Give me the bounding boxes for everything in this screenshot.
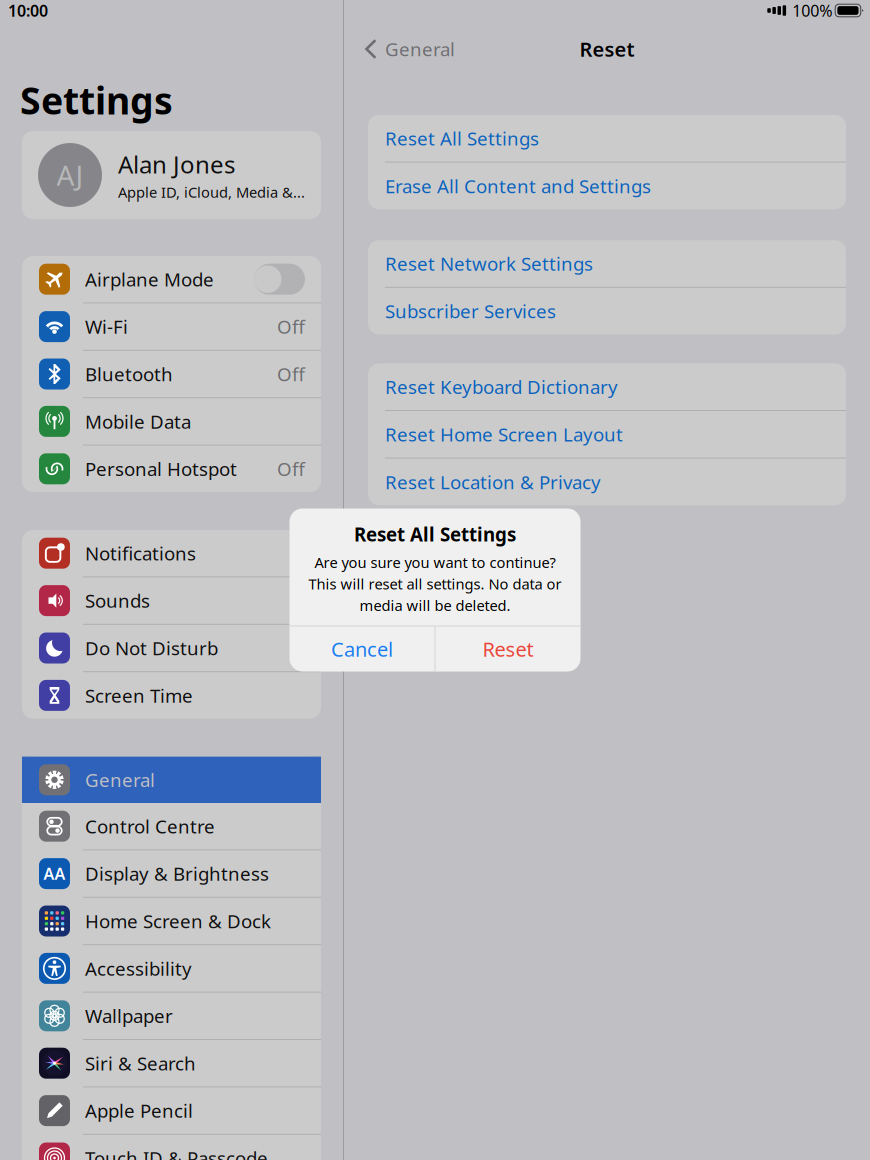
staticText: Personal Hotspot [85, 456, 237, 481]
staticText: AJ [56, 156, 83, 194]
staticText: Reset Network Settings [385, 251, 593, 276]
button[interactable]: Bluetooth [22, 351, 321, 397]
button[interactable]: Personal Hotspot [22, 446, 321, 492]
staticText: Touch ID & Passcode [85, 1146, 268, 1160]
staticText: Bluetooth [85, 362, 173, 386]
staticText: Airplane Mode [85, 267, 214, 292]
button[interactable]: Reset All Settings [368, 115, 846, 162]
button[interactable]: Accessibility [22, 945, 321, 992]
button[interactable]: Do Not Disturb [22, 625, 321, 671]
staticText: Home Screen & Dock [85, 909, 271, 933]
staticText: Sounds [85, 588, 150, 613]
staticText: Reset [579, 36, 634, 62]
staticText: Wallpaper [85, 1003, 173, 1028]
staticText: Are you sure you want to continue? [314, 553, 555, 572]
button[interactable]: Control Centre [22, 803, 321, 849]
staticText: Control Centre [85, 814, 215, 839]
button[interactable]: Notifications [22, 530, 321, 576]
staticText: Screen Time [85, 683, 193, 708]
button[interactable]: Airplane Mode [22, 256, 321, 302]
button[interactable]: Cancel [289, 626, 434, 671]
button[interactable]: General [344, 27, 465, 71]
staticText: Siri & Search [85, 1051, 196, 1076]
staticText: Reset All Settings [354, 522, 516, 547]
button[interactable]: Screen Time [22, 672, 321, 719]
button[interactable]: Apple Pencil [22, 1087, 321, 1134]
staticText: Apple Pencil [85, 1098, 193, 1123]
staticText: Off [277, 314, 305, 339]
staticText: Reset [482, 636, 533, 662]
staticText: Accessibility [85, 956, 192, 981]
button[interactable]: Subscriber Services [368, 288, 846, 334]
staticText: Cancel [331, 636, 393, 662]
staticText: This will reset all settings. No data or [308, 574, 561, 594]
staticText: 10:00 [8, 0, 48, 21]
staticText: Alan Jones [118, 148, 235, 180]
button[interactable]: General [22, 757, 321, 803]
button[interactable]: Home Screen & Dock [22, 898, 321, 944]
staticText: 100% [792, 0, 832, 21]
staticText: Reset Location & Privacy [385, 469, 601, 494]
button[interactable]: AA [22, 850, 321, 897]
button[interactable]: Mobile Data [22, 398, 321, 445]
button[interactable]: Reset Keyboard Dictionary [368, 363, 846, 410]
staticText: Notifications [85, 541, 196, 566]
staticText: Mobile Data [85, 409, 191, 434]
button[interactable]: Wallpaper [22, 993, 321, 1039]
staticText: Display & Brightness [85, 861, 269, 886]
staticText: Off [277, 456, 305, 481]
staticText: Do Not Disturb [85, 636, 218, 660]
button[interactable]: Reset [435, 626, 580, 671]
staticText: Erase All Content and Settings [385, 173, 651, 198]
button[interactable]: Reset Home Screen Layout [368, 411, 846, 458]
staticText: Off [277, 362, 305, 386]
button[interactable]: Wi-Fi [22, 303, 321, 350]
staticText: General [85, 767, 155, 792]
button[interactable]: Reset Location & Privacy [368, 459, 846, 505]
staticText: media will be deleted. [359, 596, 510, 615]
button[interactable]: Touch ID & Passcode [22, 1135, 321, 1160]
staticText: AA [43, 863, 65, 884]
staticText: Apple ID, iCloud, Media &... [118, 182, 305, 202]
staticText: Reset Home Screen Layout [385, 422, 623, 447]
staticText: General [385, 37, 455, 61]
button[interactable]: Siri & Search [22, 1040, 321, 1086]
staticText: Reset Keyboard Dictionary [385, 374, 618, 399]
staticText: Wi-Fi [85, 314, 128, 339]
button[interactable]: Reset Network Settings [368, 240, 846, 287]
staticText: Reset All Settings [385, 126, 539, 151]
staticText: Subscriber Services [385, 299, 556, 323]
button[interactable]: Erase All Content and Settings [368, 163, 846, 209]
button[interactable]: Sounds [22, 577, 321, 624]
button[interactable]: AJ [22, 131, 321, 219]
staticText: Settings [20, 75, 173, 125]
